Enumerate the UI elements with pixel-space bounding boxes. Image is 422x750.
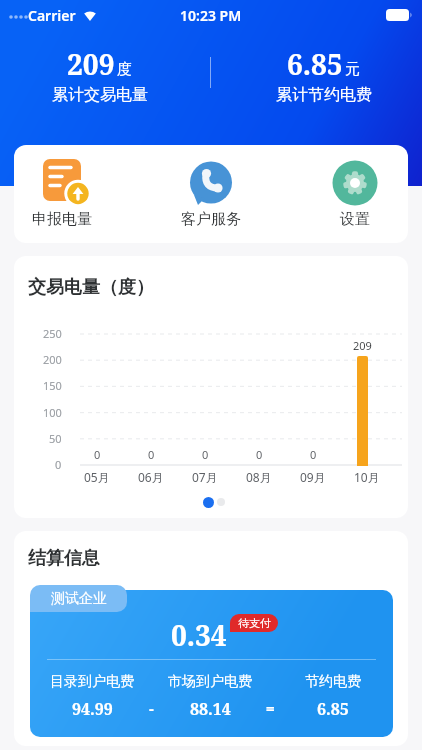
staticText: 客户服务 [181, 210, 241, 229]
staticText: 0 [55, 457, 62, 472]
staticText: 申报电量 [32, 210, 92, 229]
staticText: 交易电量（度） [28, 276, 154, 299]
button[interactable]: 待支付 [230, 614, 278, 632]
staticText: 0 [94, 447, 101, 462]
button[interactable]: 申报电量 [32, 157, 92, 229]
staticText: 09月 [300, 469, 326, 485]
staticText: 94.99 [72, 698, 113, 720]
staticText: 累计交易电量 [52, 85, 148, 105]
staticText: 设置 [340, 210, 370, 229]
staticText: 10:23 PM [180, 6, 242, 25]
button[interactable] [217, 498, 225, 506]
staticText: 6.85 [287, 45, 343, 83]
staticText: 209 [353, 338, 372, 353]
staticText: 100 [43, 405, 62, 420]
staticText: 累计节约电费 [276, 85, 372, 105]
staticText: 209 [67, 45, 115, 83]
staticText: 07月 [192, 469, 218, 485]
staticText: 10月 [354, 469, 380, 485]
staticText: 0 [256, 447, 263, 462]
staticText: 0 [310, 447, 317, 462]
staticText: 150 [43, 378, 62, 393]
button[interactable]: 测试企业 [30, 585, 127, 612]
staticText: 88.14 [190, 698, 231, 720]
button[interactable]: 目录到户电费 [30, 590, 393, 737]
staticText: 0 [148, 447, 155, 462]
button[interactable]: 客户服务 [181, 157, 241, 229]
staticText: 05月 [84, 469, 110, 485]
staticText: Carrier [28, 6, 76, 25]
staticText: 元 [345, 60, 360, 79]
staticText: 目录到户电费 [50, 673, 134, 691]
staticText: 6.85 [317, 698, 349, 720]
staticText: = [266, 698, 275, 718]
staticText: 结算信息 [28, 547, 100, 570]
staticText: 市场到户电费 [168, 673, 252, 691]
button[interactable]: 设置 [330, 157, 380, 229]
staticText: 200 [43, 352, 62, 367]
staticText: 50 [49, 431, 62, 446]
staticText: - [149, 698, 154, 718]
staticText: 06月 [138, 469, 164, 485]
staticText: 08月 [246, 469, 272, 485]
staticText: 待支付 [238, 616, 271, 630]
staticText: 测试企业 [51, 590, 107, 608]
staticText: 节约电费 [305, 673, 361, 691]
staticText: 度 [117, 60, 132, 79]
staticText: 250 [43, 326, 62, 341]
staticText: 0 [202, 447, 209, 462]
button[interactable] [203, 497, 214, 508]
staticText: 0.34 [171, 616, 227, 654]
